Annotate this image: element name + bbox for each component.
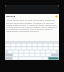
staticText: Meeting bbox=[6, 15, 55, 18]
button[interactable]: Back bbox=[5, 5, 59, 14]
button[interactable]: Keyboard bbox=[5, 41, 59, 60]
other: Star bbox=[55, 15, 58, 18]
staticText: Lorem ipsum dolor sit amet consectetur a… bbox=[6, 19, 58, 32]
